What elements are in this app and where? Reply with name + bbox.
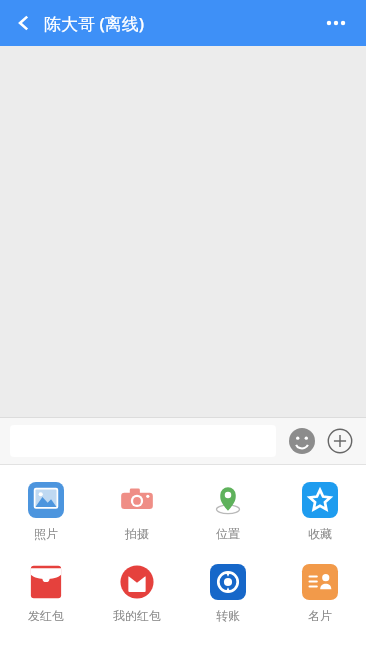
button[interactable]: Back: [4, 3, 44, 43]
button[interactable]: Add attachment: [324, 425, 356, 457]
button[interactable]: 转账: [182, 559, 274, 627]
staticText: 照片: [34, 526, 58, 541]
button[interactable]: 收藏: [274, 477, 366, 545]
staticText: 转账: [216, 608, 240, 623]
staticText: 陈大哥 (离线): [44, 12, 145, 35]
button[interactable]: Emoji: [286, 425, 318, 457]
staticText: 发红包: [28, 608, 64, 623]
button[interactable]: 发红包: [0, 559, 91, 627]
staticText: 拍摄: [125, 526, 149, 541]
staticText: 收藏: [308, 526, 332, 541]
staticText: 名片: [308, 608, 332, 623]
staticText: 位置: [216, 526, 240, 541]
button[interactable]: 照片: [0, 477, 91, 545]
button[interactable]: 我的红包: [91, 559, 182, 627]
button[interactable]: 拍摄: [91, 477, 182, 545]
button[interactable]: More options: [314, 1, 358, 45]
staticText: 我的红包: [113, 608, 161, 623]
button[interactable]: 名片: [274, 559, 366, 627]
button[interactable]: 位置: [182, 477, 274, 545]
